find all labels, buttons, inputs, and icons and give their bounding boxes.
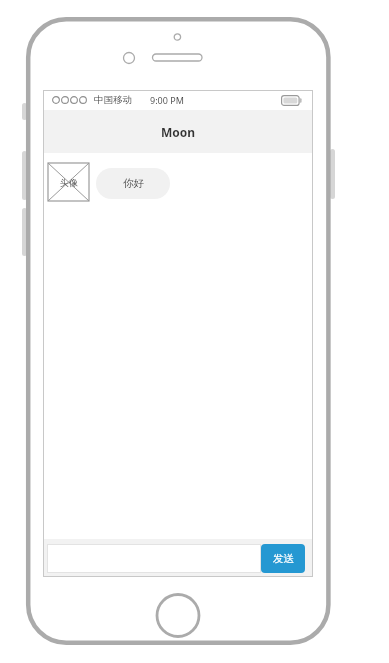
staticText: 头像 xyxy=(60,177,78,188)
staticText: 中国移动 xyxy=(94,94,132,106)
button[interactable] xyxy=(47,544,261,573)
button[interactable]: 你好 xyxy=(96,168,170,199)
button[interactable]: 发送 xyxy=(261,544,305,573)
staticText: Moon xyxy=(161,124,196,140)
button[interactable]: 头像 xyxy=(48,163,89,201)
staticText: 你好 xyxy=(123,177,144,190)
staticText: 发送 xyxy=(273,552,294,565)
staticText: 9:00 PM xyxy=(150,94,184,106)
